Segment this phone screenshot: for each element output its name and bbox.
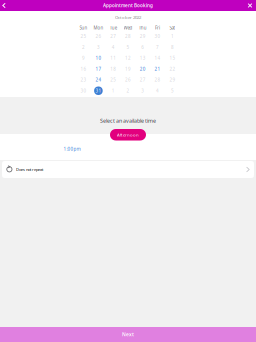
staticText: 2 (126, 88, 129, 94)
button[interactable]: 3 (91, 42, 106, 53)
button[interactable]: 11 (106, 53, 121, 63)
button[interactable]: 8 (165, 42, 180, 53)
button[interactable]: 13 (135, 53, 150, 63)
button[interactable]: 3 (135, 85, 150, 96)
button[interactable]: 24 (91, 74, 106, 85)
button[interactable]: 6 (135, 42, 150, 53)
staticText: Thu (139, 25, 147, 31)
staticText: 1 (171, 33, 174, 39)
staticText: Mon (93, 25, 103, 31)
staticText: 5 (126, 44, 129, 50)
staticText: Sun (80, 25, 88, 31)
staticText: 29 (169, 77, 175, 83)
staticText: 10 (95, 55, 101, 61)
button[interactable]: Close (244, 0, 255, 11)
staticText: Appointment Booking (103, 2, 153, 9)
button[interactable]: 4 (150, 85, 165, 96)
button[interactable]: 15 (165, 53, 180, 63)
button[interactable]: 26 (91, 31, 106, 42)
staticText: 16 (81, 66, 87, 72)
staticText: 8 (171, 44, 174, 50)
staticText: 21 (155, 66, 161, 72)
button[interactable]: 25 (76, 31, 91, 42)
staticText: 22 (169, 66, 175, 72)
staticText: 5 (171, 88, 174, 94)
button[interactable]: 29 (135, 31, 150, 42)
staticText: 27 (140, 77, 146, 83)
button[interactable]: 20 (135, 63, 150, 74)
staticText: 28 (125, 33, 131, 39)
button[interactable]: 27 (106, 31, 121, 42)
button[interactable]: 21 (150, 63, 165, 74)
button[interactable]: Back (0, 0, 9, 11)
staticText: 4 (156, 88, 159, 94)
staticText: Tue (110, 25, 117, 31)
staticText: 25 (81, 33, 87, 39)
button[interactable]: 4 (106, 42, 121, 53)
button[interactable]: 18 (106, 63, 121, 74)
button[interactable]: 1:00pm (58, 144, 86, 154)
button[interactable]: 27 (135, 74, 150, 85)
staticText: 19 (125, 66, 131, 72)
button[interactable]: Next (0, 327, 256, 342)
button[interactable]: 22 (165, 63, 180, 74)
button[interactable]: 5 (121, 42, 135, 53)
staticText: 27 (110, 33, 116, 39)
staticText: Sat (169, 25, 175, 31)
staticText: 29 (140, 33, 146, 39)
staticText: 26 (95, 33, 101, 39)
button[interactable]: Afternoon (110, 129, 146, 140)
button[interactable]: 10 (91, 53, 106, 63)
button[interactable]: 9 (76, 53, 91, 63)
button[interactable]: Does not repeat (2, 161, 254, 178)
button[interactable]: 16 (76, 63, 91, 74)
staticText: October 2022 (115, 14, 141, 20)
button[interactable]: 25 (106, 74, 121, 85)
staticText: 4 (112, 44, 115, 50)
staticText: 15 (169, 55, 175, 61)
button[interactable]: 28 (150, 74, 165, 85)
staticText: Wed (123, 25, 132, 31)
staticText: 1:00pm (63, 146, 80, 152)
button[interactable]: 28 (121, 31, 135, 42)
staticText: Select an available time (100, 117, 156, 124)
button[interactable]: 19 (121, 63, 135, 74)
staticText: Does not repeat (16, 167, 43, 172)
button[interactable]: 12 (121, 53, 135, 63)
button[interactable]: 30 (76, 85, 91, 96)
button[interactable]: 2 (76, 42, 91, 53)
staticText: 7 (156, 44, 159, 50)
staticText: 31 (95, 88, 101, 94)
button[interactable]: 2 (121, 85, 135, 96)
staticText: 3 (97, 44, 100, 50)
staticText: 3 (141, 88, 144, 94)
staticText: 9 (82, 55, 85, 61)
button[interactable]: 5 (165, 85, 180, 96)
staticText: 2 (82, 44, 85, 50)
staticText: 1 (112, 88, 115, 94)
button[interactable]: 29 (165, 74, 180, 85)
staticText: 23 (81, 77, 87, 83)
button[interactable]: 30 (150, 31, 165, 42)
button[interactable]: 31 (91, 85, 106, 96)
staticText: 12 (125, 55, 131, 61)
staticText: 18 (110, 66, 116, 72)
staticText: 20 (140, 66, 146, 72)
staticText: 13 (140, 55, 146, 61)
button[interactable]: 7 (150, 42, 165, 53)
staticText: 28 (155, 77, 161, 83)
staticText: 26 (125, 77, 131, 83)
button[interactable]: 14 (150, 53, 165, 63)
staticText: Fri (155, 25, 160, 31)
staticText: 6 (141, 44, 144, 50)
staticText: 30 (155, 33, 161, 39)
staticText: Afternoon (117, 132, 139, 138)
staticText: 14 (155, 55, 161, 61)
staticText: 24 (95, 77, 101, 83)
staticText: 25 (110, 77, 116, 83)
button[interactable]: 17 (91, 63, 106, 74)
button[interactable]: 26 (121, 74, 135, 85)
button[interactable]: 23 (76, 74, 91, 85)
